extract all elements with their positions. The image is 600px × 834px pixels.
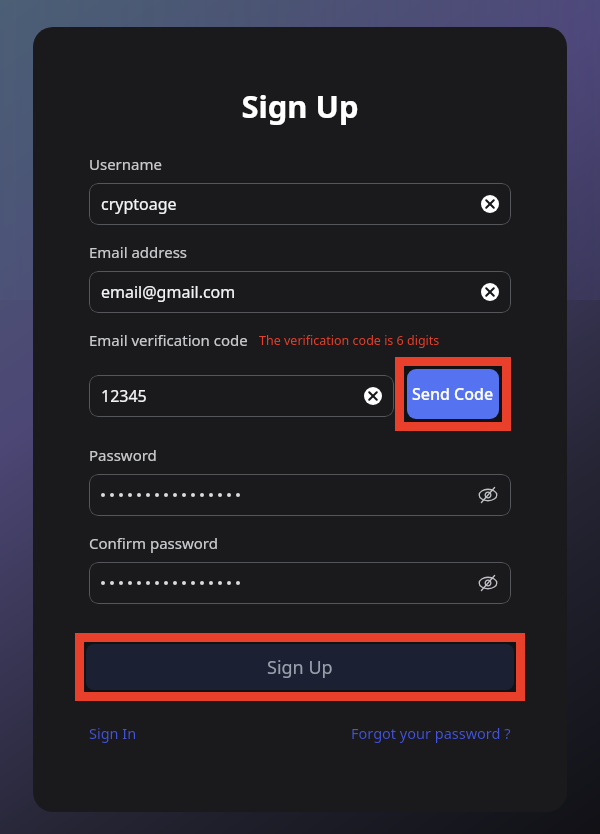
staticText: email@gmail.com [101, 281, 236, 303]
other: Clear text [481, 283, 499, 301]
staticText: Sign Up [33, 85, 567, 127]
staticText: Username [89, 154, 162, 174]
button[interactable]: Show password [89, 562, 511, 604]
staticText: Forgot your password ? [351, 723, 511, 743]
staticText: Password [89, 445, 157, 465]
staticText: 12345 [101, 385, 147, 407]
button[interactable]: Sign In [89, 723, 137, 743]
button[interactable]: email@gmail.com [89, 271, 511, 313]
button[interactable]: Sign Up [86, 644, 514, 690]
button[interactable]: cryptoage [89, 183, 511, 225]
staticText: Confirm password [89, 533, 218, 553]
button[interactable]: Forgot your password ? [351, 723, 511, 743]
staticText: Sign In [89, 723, 137, 743]
button[interactable]: 12345 [89, 375, 394, 417]
staticText: Send Code [412, 383, 494, 405]
staticText: cryptoage [101, 193, 177, 215]
other: Clear text [481, 195, 499, 213]
other: Clear text [364, 387, 382, 405]
button[interactable]: Show password [89, 474, 511, 516]
staticText: Sign Up [267, 655, 333, 680]
staticText: The verification code is 6 digits [259, 332, 440, 349]
staticText: Email address [89, 242, 188, 262]
button[interactable]: Send Code [407, 369, 499, 419]
other: Show password [477, 484, 499, 506]
staticText: Email verification code [89, 330, 248, 350]
other: Show password [477, 572, 499, 594]
